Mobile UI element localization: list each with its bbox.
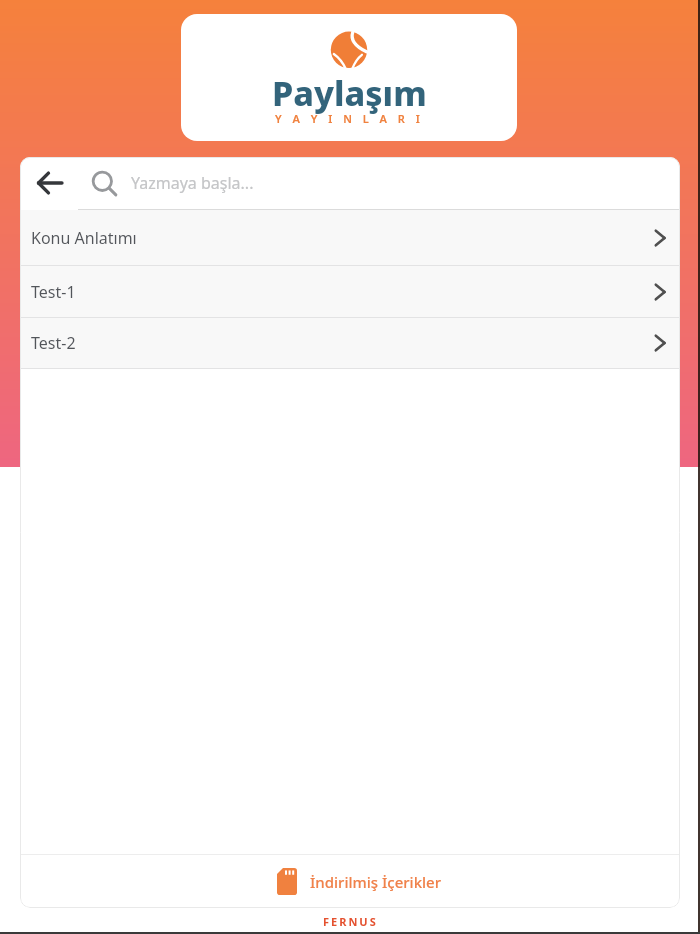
- staticText: Test-1: [31, 281, 76, 303]
- staticText: Test-2: [31, 332, 76, 354]
- staticText: Y A Y I N L A R I: [275, 111, 424, 126]
- button[interactable]: Test-2: [20, 318, 680, 368]
- staticText: Konu Anlatımı: [31, 227, 137, 249]
- staticText: İndirilmiş İçerikler: [310, 872, 442, 892]
- staticText: Yazmaya başla...: [131, 172, 254, 194]
- button[interactable]: Konu Anlatımı: [20, 210, 680, 265]
- staticText: FERNUS: [323, 914, 378, 929]
- button[interactable]: İndirilmiş İçerikler: [20, 855, 680, 908]
- button[interactable]: [20, 157, 72, 209]
- staticText: Paylaşım: [272, 70, 427, 116]
- button[interactable]: Test-1: [20, 266, 680, 317]
